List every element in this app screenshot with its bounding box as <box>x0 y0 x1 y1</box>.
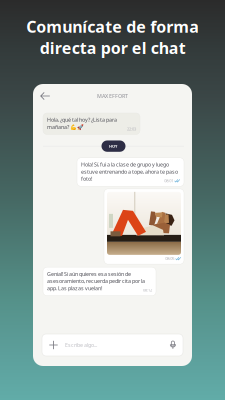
button[interactable]: Add attachment <box>47 338 60 351</box>
button[interactable]: Back <box>40 88 60 104</box>
button[interactable]: Record voice message <box>168 338 178 351</box>
staticText: Hola, ¿qué tal hoy? ¿Lista para mañana? … <box>47 116 117 130</box>
staticText: 22:03 <box>127 126 136 131</box>
staticText: 08:12 <box>143 287 152 293</box>
staticText: 08:05 <box>165 256 174 261</box>
staticText: 08:01 <box>164 178 173 183</box>
staticText: HOY <box>109 143 118 149</box>
staticText: Comunícate de forma directa por el chat <box>26 16 199 58</box>
staticText: MAX EFFORT <box>97 92 128 100</box>
staticText: Genial! Si aún quieres esa sesión de ase… <box>47 270 145 292</box>
staticText: Hola! Sí, fui a la clase de grupo y lueg… <box>81 161 178 182</box>
staticText: Escribe algo... <box>65 341 97 349</box>
